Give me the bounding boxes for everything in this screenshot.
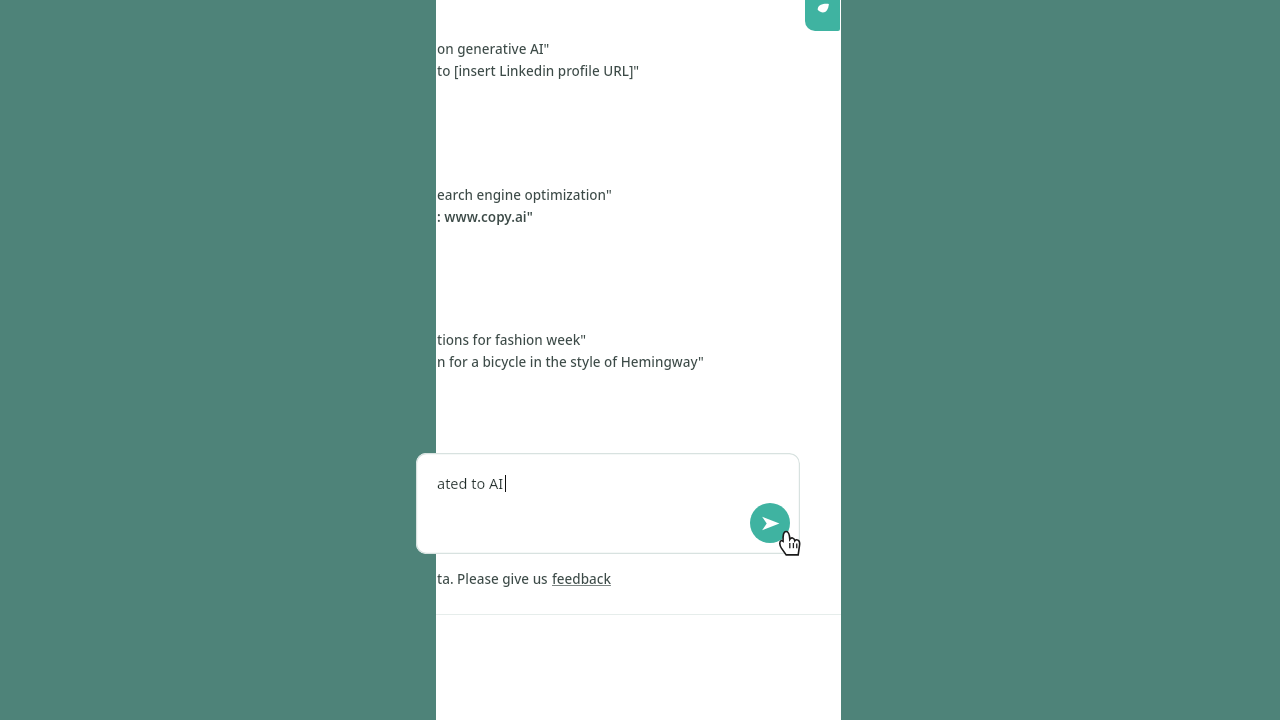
staticText: on generative AI" xyxy=(437,40,550,58)
staticText: ta. Please give us xyxy=(437,570,552,588)
staticText: ated to AI xyxy=(437,473,504,493)
staticText: n for a bicycle in the style of Hemingwa… xyxy=(437,353,704,371)
staticText: to [insert Linkedin profile URL]" xyxy=(437,62,640,80)
staticText: earch engine optimization" xyxy=(437,186,612,204)
staticText: tions for fashion week" xyxy=(437,331,587,349)
staticText: feedback xyxy=(552,570,611,588)
staticText: : www.copy.ai" xyxy=(437,208,533,226)
button[interactable]: Send xyxy=(750,503,790,543)
button[interactable]: Copy AI xyxy=(805,0,840,31)
button[interactable]: ated to AI xyxy=(416,453,800,554)
button[interactable]: feedback xyxy=(552,570,611,588)
